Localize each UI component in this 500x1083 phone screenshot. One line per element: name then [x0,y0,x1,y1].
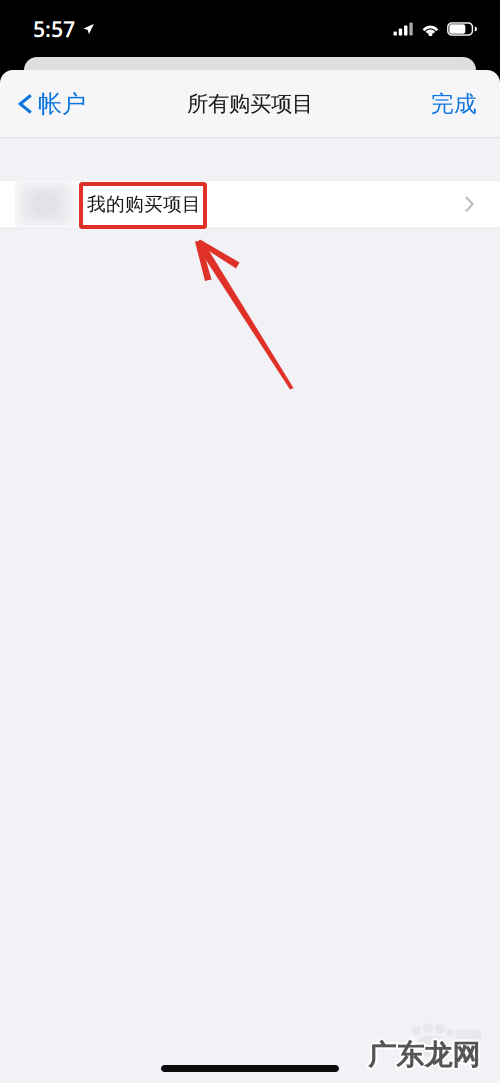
staticText: 广东龙网 [370,1038,482,1072]
staticText: 广东龙网 [368,1036,480,1070]
staticText: 广东龙网 [370,1040,482,1074]
staticText: 完成 [431,90,477,118]
staticText: 广东龙网 [366,1038,478,1072]
staticText: 广东龙网 [368,1040,480,1075]
staticText: 所有购买项目 [187,91,313,117]
button[interactable]: 完成 [419,76,500,132]
staticText: 广东龙网 [366,1040,478,1074]
staticText: 我的购买项目 [87,193,201,216]
staticText: 广东龙网 [370,1036,482,1071]
button[interactable]: 帐户 [0,76,98,132]
button[interactable]: 我的购买项目 [0,181,500,228]
staticText: 帐户 [38,89,86,119]
staticText: 5:57 [33,15,75,43]
staticText: 广东龙网 [366,1036,478,1071]
staticText: 广东龙网 [368,1038,480,1072]
